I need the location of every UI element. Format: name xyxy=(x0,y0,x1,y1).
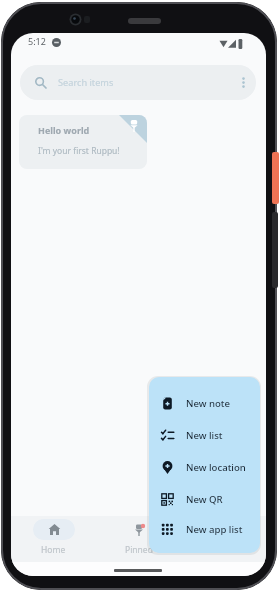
staticText: 5:12 xyxy=(28,35,46,47)
button[interactable]: Pinned xyxy=(96,516,181,562)
staticText: Hello world xyxy=(38,124,90,136)
button[interactable]: New list xyxy=(149,419,260,451)
staticText: I'm your first Ruppu! xyxy=(38,145,120,157)
staticText: New list xyxy=(186,429,223,442)
staticText: New QR xyxy=(186,493,223,506)
button[interactable]: New note xyxy=(149,387,260,419)
staticText: New app list xyxy=(186,523,243,536)
staticText: Search items xyxy=(58,76,114,89)
button[interactable]: Hello world xyxy=(19,115,147,169)
staticText: Pinned xyxy=(125,544,153,556)
button[interactable]: New location xyxy=(149,451,260,483)
button[interactable]: Home xyxy=(11,516,96,562)
staticText: Home xyxy=(41,544,66,556)
button[interactable]: New app list xyxy=(149,515,260,543)
button[interactable]: New QR xyxy=(149,483,260,515)
staticText: New note xyxy=(186,397,231,410)
button[interactable] xyxy=(181,516,266,562)
button[interactable]: Search items xyxy=(20,65,256,100)
staticText: New location xyxy=(186,461,246,474)
